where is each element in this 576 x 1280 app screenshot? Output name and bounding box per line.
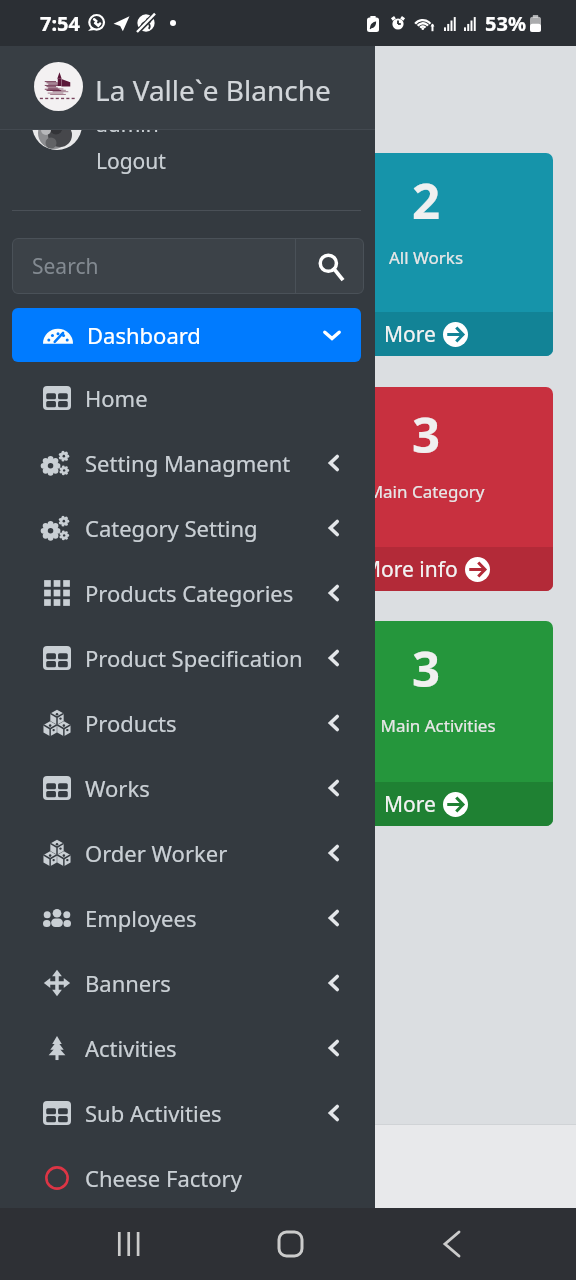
staticText: Products bbox=[85, 708, 177, 738]
staticText: Cheese Factory bbox=[85, 1163, 242, 1193]
button[interactable]: Products Categories bbox=[0, 560, 375, 625]
button[interactable]: Sub Activities bbox=[0, 1080, 375, 1145]
staticText: Product Specification bbox=[85, 643, 303, 673]
staticText: Sub Activities bbox=[85, 1098, 222, 1128]
staticText: Dashboard bbox=[87, 320, 201, 350]
staticText: 53% bbox=[485, 10, 526, 37]
staticText: Banners bbox=[85, 968, 171, 998]
button[interactable]: Recent apps bbox=[69, 1208, 189, 1280]
staticText: Category Setting bbox=[85, 513, 258, 543]
staticText: Employees bbox=[85, 903, 197, 933]
staticText: Main Category bbox=[299, 480, 553, 503]
button[interactable]: Category Setting bbox=[0, 495, 375, 560]
staticText: La Valle`e Blanche bbox=[95, 71, 331, 109]
staticText: 3 bbox=[299, 401, 553, 468]
button[interactable]: Banners bbox=[0, 950, 375, 1015]
staticText: 2 bbox=[299, 167, 553, 234]
button[interactable]: 3 bbox=[299, 621, 553, 826]
button[interactable]: Search bbox=[296, 238, 364, 294]
staticText: admin bbox=[96, 110, 159, 139]
staticText: All Main Activities bbox=[299, 714, 553, 737]
button[interactable]: Products bbox=[0, 690, 375, 755]
staticText: 7:54 bbox=[40, 10, 80, 37]
staticText: Works bbox=[85, 773, 150, 803]
button[interactable]: Back bbox=[392, 1208, 512, 1280]
button[interactable]: Home bbox=[230, 1208, 350, 1280]
button[interactable]: La Valle`e Blanche bbox=[0, 0, 375, 130]
button[interactable]: Works bbox=[0, 755, 375, 820]
staticText: More bbox=[384, 320, 436, 349]
button[interactable]: Setting Managment bbox=[0, 430, 375, 495]
button[interactable]: Product Specification bbox=[0, 625, 375, 690]
staticText: All Works bbox=[299, 246, 553, 269]
button[interactable]: Employees bbox=[0, 885, 375, 950]
button[interactable]: Order Worker bbox=[0, 820, 375, 885]
button[interactable]: Activities bbox=[0, 1015, 375, 1080]
button[interactable]: Cheese Factory bbox=[0, 1145, 375, 1210]
button[interactable]: 2 bbox=[299, 153, 553, 356]
staticText: More info bbox=[362, 555, 458, 584]
staticText: Logout bbox=[96, 147, 166, 176]
staticText: Products Categories bbox=[85, 578, 294, 608]
button[interactable]: Home bbox=[0, 365, 375, 430]
staticText: Home bbox=[85, 383, 148, 413]
staticText: 3 bbox=[299, 635, 553, 702]
button[interactable]: Dashboard bbox=[12, 308, 361, 362]
staticText: More bbox=[384, 790, 436, 819]
button[interactable]: 3 bbox=[299, 387, 553, 591]
staticText: Activities bbox=[85, 1033, 177, 1063]
staticText: Setting Managment bbox=[85, 448, 291, 478]
staticText: Search bbox=[32, 252, 99, 281]
button[interactable]: Search bbox=[12, 238, 295, 294]
staticText: Order Worker bbox=[85, 838, 228, 868]
